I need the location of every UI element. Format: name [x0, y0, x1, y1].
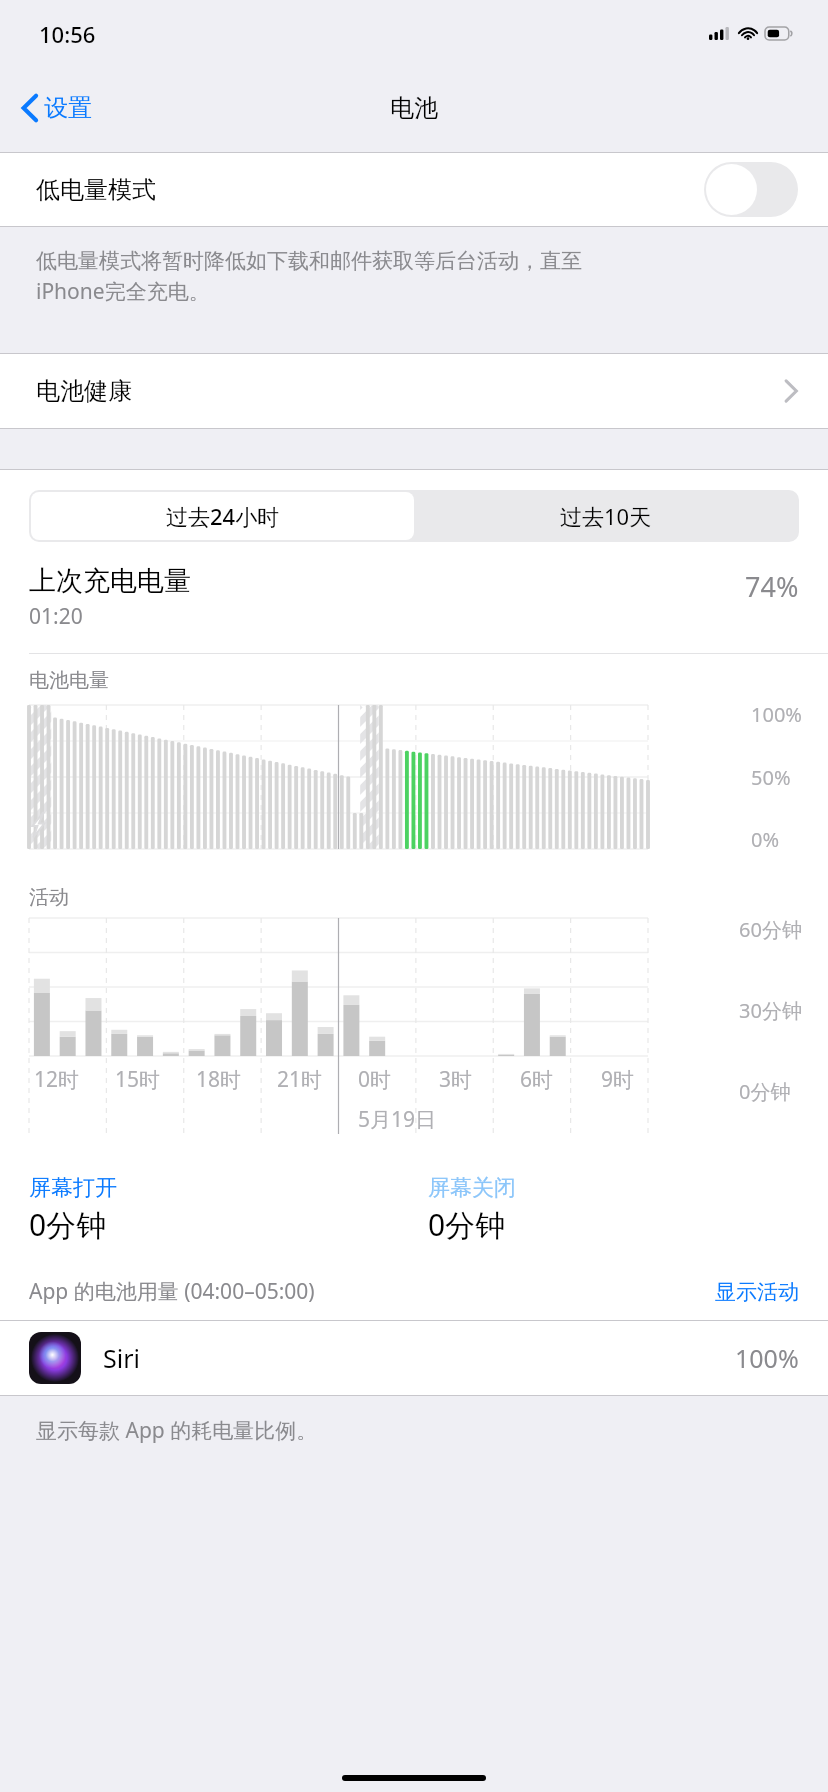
staticText: 屏幕关闭: [428, 1174, 516, 1202]
staticText: 6时: [520, 1065, 554, 1094]
staticText: Siri: [103, 1341, 140, 1375]
button[interactable]: 设置: [0, 83, 106, 133]
button[interactable]: Siri: [0, 1321, 828, 1395]
staticText: 01:20: [29, 602, 83, 631]
staticText: 屏幕打开: [29, 1174, 117, 1202]
staticText: 0分钟: [428, 1204, 506, 1245]
staticText: 过去24小时: [166, 501, 280, 531]
staticText: 电池电量: [29, 668, 109, 693]
staticText: 100%: [751, 701, 802, 728]
staticText: 21时: [277, 1065, 323, 1094]
staticText: 活动: [29, 885, 69, 910]
button[interactable]: 显示活动: [715, 1279, 799, 1305]
staticText: 显示活动: [715, 1279, 799, 1305]
staticText: 100%: [735, 1341, 799, 1375]
staticText: 上次充电电量: [29, 564, 191, 598]
button[interactable]: 电池健康: [0, 354, 828, 428]
button[interactable]: 低电量模式: [0, 153, 828, 226]
staticText: 5月19日: [358, 1105, 437, 1134]
button[interactable]: 过去10天: [414, 492, 797, 540]
staticText: 电池: [390, 93, 438, 123]
staticText: 低电量模式将暂时降低如下载和邮件获取等后台活动，直至 iPhone完全充电。: [36, 248, 582, 305]
button[interactable]: 过去24小时: [31, 492, 414, 540]
staticText: 3时: [439, 1065, 473, 1094]
staticText: 过去10天: [560, 501, 652, 531]
staticText: 50%: [751, 764, 791, 791]
staticText: 0分钟: [29, 1204, 107, 1245]
staticText: 30分钟: [739, 997, 802, 1024]
staticText: 74%: [745, 568, 799, 605]
staticText: 18时: [196, 1065, 242, 1094]
staticText: 60分钟: [739, 916, 802, 943]
staticText: App 的电池用量 (04:00–05:00): [29, 1277, 315, 1306]
staticText: 9时: [601, 1065, 635, 1094]
staticText: 设置: [44, 93, 92, 123]
staticText: 10:56: [39, 19, 96, 49]
staticText: 电池健康: [36, 376, 132, 406]
staticText: 0%: [751, 826, 780, 853]
staticText: 显示每款 App 的耗电量比例。: [36, 1416, 318, 1445]
staticText: 12时: [34, 1065, 80, 1094]
staticText: 0分钟: [739, 1078, 791, 1105]
staticText: 15时: [115, 1065, 161, 1094]
staticText: 低电量模式: [36, 175, 156, 205]
other: 低电量模式开关: [704, 162, 798, 217]
staticText: 0时: [358, 1065, 392, 1094]
